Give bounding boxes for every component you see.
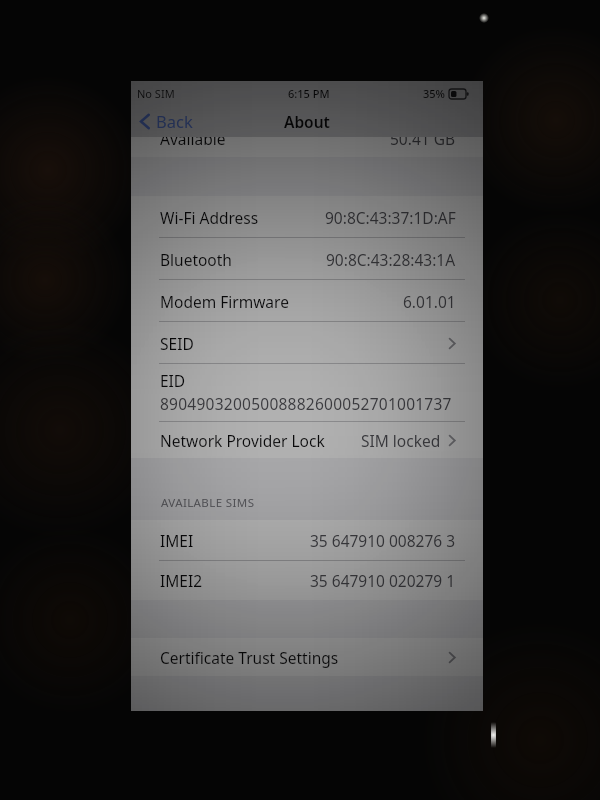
staticText: 90:8C:43:37:1D:AF xyxy=(325,207,456,228)
staticText: IMEI2 xyxy=(160,570,203,591)
staticText: EID xyxy=(160,370,186,391)
staticText: 89049032005008882600052701001737 xyxy=(160,393,452,414)
button[interactable]: SEID xyxy=(131,322,483,364)
staticText: 6.01.01 xyxy=(403,291,456,312)
staticText: 50.41 GB xyxy=(390,137,456,148)
button[interactable]: Network Provider Lock xyxy=(131,422,483,458)
staticText: 35 647910 008276 3 xyxy=(310,530,456,551)
staticText: Wi-Fi Address xyxy=(160,207,259,228)
staticText: 6:15 PM xyxy=(288,86,330,101)
button[interactable]: IMEI2 xyxy=(131,561,483,600)
staticText: No SIM xyxy=(137,86,175,101)
staticText: Modem Firmware xyxy=(160,291,289,312)
staticText: About xyxy=(284,111,330,132)
staticText: Network Provider Lock xyxy=(160,430,325,451)
staticText: 90:8C:43:28:43:1A xyxy=(326,249,456,270)
staticText: Bluetooth xyxy=(160,249,232,270)
button[interactable]: Bluetooth xyxy=(131,238,483,280)
staticText: 35% xyxy=(423,86,445,101)
staticText: Available xyxy=(160,137,226,148)
staticText: 35 647910 020279 1 xyxy=(310,570,456,591)
staticText: AVAILABLE SIMS xyxy=(161,495,255,511)
button[interactable]: Wi-Fi Address xyxy=(131,196,483,238)
staticText: Certificate Trust Settings xyxy=(160,647,339,668)
staticText: SIM locked xyxy=(361,430,441,451)
button[interactable]: EID xyxy=(131,364,483,422)
button[interactable]: Modem Firmware xyxy=(131,280,483,322)
staticText: IMEI xyxy=(160,530,194,551)
staticText: SEID xyxy=(160,333,194,354)
button[interactable]: IMEI xyxy=(131,520,483,561)
button[interactable]: Certificate Trust Settings xyxy=(131,638,483,676)
button[interactable]: Back xyxy=(131,105,201,137)
staticText: Back xyxy=(156,110,193,132)
